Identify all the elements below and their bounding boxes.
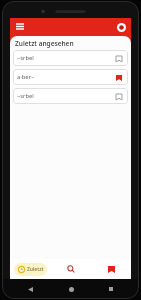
button[interactable]: Menü öffnen	[14, 21, 26, 33]
staticText: Zuletzt angesehen	[15, 39, 74, 48]
button[interactable]: Zurück	[24, 283, 36, 295]
button[interactable]: Startbildschirm	[65, 283, 77, 295]
staticText: Zuletzt	[27, 266, 44, 273]
button[interactable]: ~srbel	[13, 50, 128, 66]
staticText: a·ber~	[17, 73, 113, 81]
button[interactable]: Aus Merkliste entfernen	[113, 72, 124, 83]
button[interactable]: Merkliste	[91, 259, 131, 279]
staticText: ~srbel	[17, 54, 113, 62]
button[interactable]: a·ber~	[13, 69, 128, 85]
button[interactable]: Merken	[113, 91, 124, 102]
button[interactable]: Zuletzt	[14, 263, 47, 276]
button[interactable]: Merken	[113, 53, 124, 64]
button[interactable]: Konto	[115, 21, 127, 33]
button[interactable]: Übersicht	[105, 283, 117, 295]
staticText: ~srbel	[17, 92, 113, 100]
button[interactable]: Suche	[51, 259, 91, 279]
button[interactable]: ~srbel	[13, 88, 128, 104]
